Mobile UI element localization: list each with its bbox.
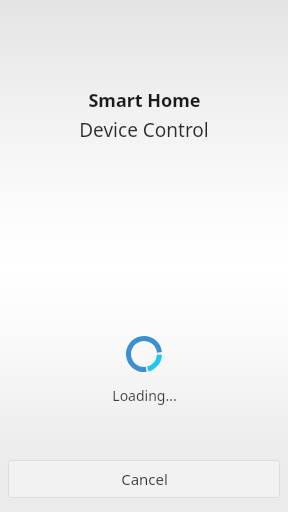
staticText: Loading... [112, 386, 177, 405]
button[interactable]: Cancel [8, 460, 280, 498]
staticText: Cancel [121, 469, 168, 489]
staticText: Device Control [79, 117, 209, 143]
other: Loading [126, 336, 162, 372]
staticText: Smart Home [88, 88, 201, 113]
